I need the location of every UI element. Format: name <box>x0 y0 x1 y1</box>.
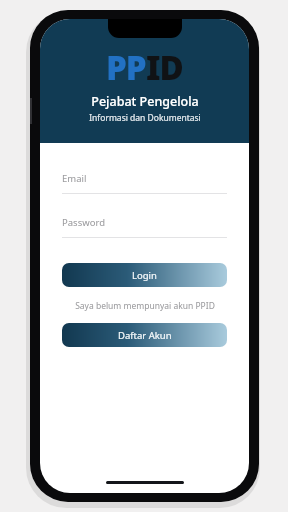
other: Camera notch <box>108 19 182 38</box>
staticText: ID <box>146 45 183 90</box>
staticText: Password <box>62 216 105 229</box>
staticText: Informasi dan Dokumentasi <box>89 112 201 124</box>
button[interactable]: Password <box>62 216 227 238</box>
staticText: Daftar Akun <box>118 329 172 342</box>
staticText: Pejabat Pengelola <box>91 93 199 110</box>
staticText: Email <box>62 172 87 185</box>
staticText: PP <box>106 45 146 90</box>
button[interactable]: Login <box>62 263 227 287</box>
staticText: Login <box>132 269 157 282</box>
button[interactable]: Email <box>62 172 227 194</box>
staticText: Saya belum mempunyai akun PPID <box>75 300 215 312</box>
button[interactable]: Daftar Akun <box>62 323 227 347</box>
